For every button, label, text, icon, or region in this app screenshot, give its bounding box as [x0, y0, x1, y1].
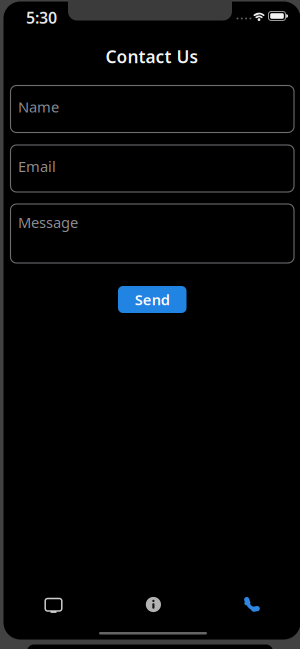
- button[interactable]: Send: [118, 286, 186, 313]
- staticText: Contact Us: [105, 45, 198, 68]
- staticText: Email: [18, 156, 56, 176]
- staticText: 5:30: [26, 7, 57, 28]
- button[interactable]: Call: [201, 582, 300, 626]
- button[interactable]: Name: [10, 85, 294, 132]
- button[interactable]: Display: [3, 582, 102, 626]
- staticText: Name: [18, 97, 59, 116]
- button[interactable]: Email: [10, 145, 294, 192]
- button[interactable]: Info: [102, 582, 201, 626]
- staticText: Send: [135, 290, 170, 309]
- button[interactable]: Message: [10, 204, 294, 263]
- staticText: Message: [18, 212, 78, 232]
